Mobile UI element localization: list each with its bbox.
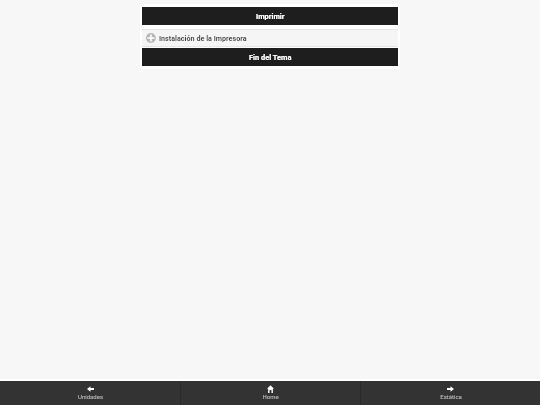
button[interactable]: Imprimir	[142, 7, 398, 25]
button[interactable]: Fin del Tema	[142, 48, 398, 66]
staticText: Imprimir	[256, 12, 285, 21]
button[interactable]: Home	[181, 381, 360, 405]
button[interactable]: Instalación de la Impresora	[142, 29, 398, 47]
staticText: Unidades	[78, 393, 103, 400]
button[interactable]: Unidades, previous unit	[0, 381, 180, 405]
staticText: Instalación de la Impresora	[159, 34, 247, 42]
staticText: Fin del Tema	[249, 53, 292, 62]
staticText: Home	[262, 393, 279, 400]
button[interactable]: Estática, next	[361, 381, 540, 405]
staticText: Estática	[440, 393, 462, 400]
